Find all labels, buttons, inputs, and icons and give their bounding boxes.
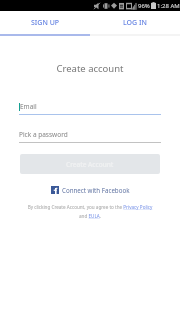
button[interactable]: SIGN UP [0, 11, 90, 34]
button[interactable]: Email [19, 103, 161, 115]
button[interactable]: Facebook [0, 186, 180, 194]
staticText: Pick a password [19, 130, 68, 139]
button[interactable]: Pick a password [19, 131, 161, 143]
staticText: Create Account [66, 160, 114, 169]
other: Facebook [51, 186, 59, 194]
staticText: 1:28 AM [157, 2, 180, 10]
staticText: By clicking Create Account, you agree to… [0, 204, 180, 219]
staticText: Email [20, 102, 37, 111]
staticText: Create account [0, 62, 180, 75]
staticText: Connect with Facebook [62, 186, 130, 194]
button[interactable]: LOG IN [90, 11, 180, 34]
staticText: 96% [138, 2, 150, 10]
staticText: SIGN UP [31, 18, 60, 28]
staticText: LOG IN [123, 18, 147, 28]
